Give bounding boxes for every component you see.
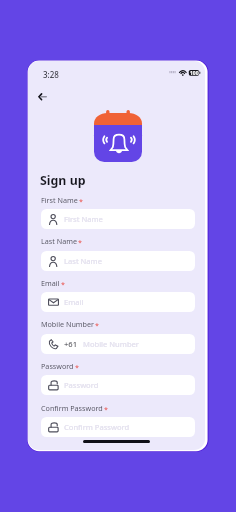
staticText: *: [75, 362, 79, 372]
staticText: Password: [41, 361, 74, 371]
staticText: Mobile Number: [41, 319, 94, 329]
staticText: Password: [64, 380, 99, 390]
staticText: *: [95, 320, 99, 330]
staticText: +61: [64, 339, 78, 349]
staticText: Last Name: [41, 236, 77, 246]
button[interactable]: +61: [41, 334, 195, 354]
staticText: First Name: [41, 195, 78, 205]
staticText: *: [79, 196, 83, 206]
button[interactable]: Confirm Password: [41, 417, 195, 437]
button[interactable]: Email: [41, 292, 195, 312]
staticText: Last Name: [64, 256, 103, 266]
staticText: *: [61, 279, 65, 289]
staticText: Mobile Number: [83, 339, 139, 349]
button[interactable]: First Name: [41, 209, 195, 229]
staticText: 3:28: [43, 69, 59, 80]
staticText: Email: [41, 278, 60, 288]
staticText: 100: [190, 70, 199, 76]
staticText: *: [78, 237, 82, 247]
staticText: Confirm Password: [64, 422, 130, 432]
staticText: Sign up: [40, 172, 86, 189]
staticText: First Name: [64, 214, 103, 224]
staticText: Email: [64, 297, 84, 307]
button[interactable]: Password: [41, 375, 195, 395]
staticText: *: [104, 404, 108, 414]
button[interactable]: Last Name: [41, 251, 195, 271]
button[interactable]: Back: [33, 87, 53, 107]
staticText: Confirm Password: [41, 403, 103, 413]
